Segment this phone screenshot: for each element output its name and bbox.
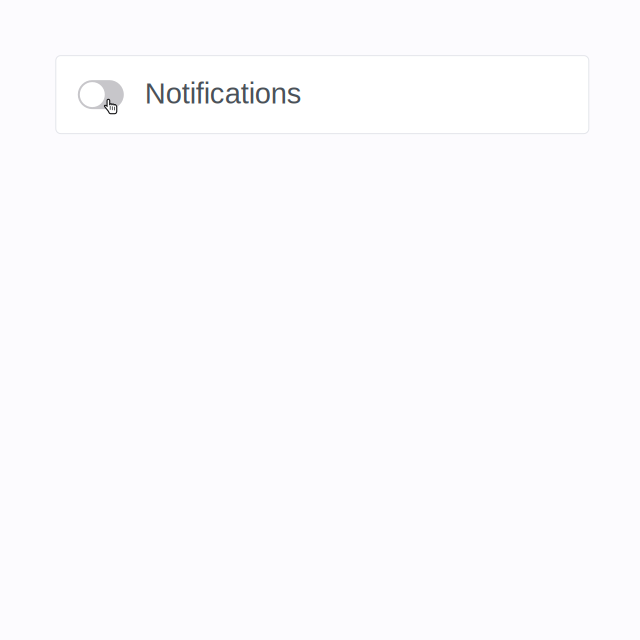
- staticText: Notifications: [145, 77, 302, 110]
- button[interactable]: Notifications: [56, 56, 589, 134]
- button[interactable]: Notifications, off: [78, 80, 124, 109]
